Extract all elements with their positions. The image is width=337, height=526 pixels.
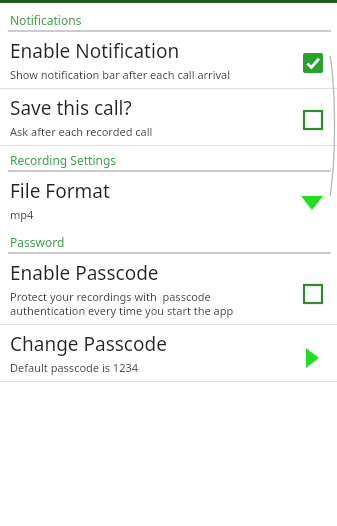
button[interactable]: Choose file format [297,188,327,218]
staticText: Password [10,234,65,250]
button[interactable]: Enable Passcode checkbox [297,278,327,308]
button[interactable]: Enable Passcode [0,254,337,324]
button[interactable]: Save this call checkbox [297,104,327,134]
staticText: Show notification bar after each call ar… [10,67,231,82]
staticText: Default passcode is 1234 [10,360,139,375]
staticText: Notifications [10,12,82,28]
button[interactable]: Change Passcode [297,343,327,373]
staticText: Protect your recordings with passcode au… [10,289,234,318]
staticText: Ask after each recorded call [10,124,153,139]
button[interactable]: Enable Notification [0,32,337,88]
staticText: File Format [10,178,110,204]
button[interactable]: Change Passcode [0,325,337,381]
staticText: Save this call? [10,95,132,121]
staticText: Recording Settings [10,152,117,168]
button[interactable]: File Format [0,172,337,228]
staticText: Enable Passcode [10,260,159,286]
staticText: Enable Notification [10,38,180,64]
staticText: mp4 [10,207,34,222]
button[interactable]: Enable Notification checkbox [297,47,327,77]
button[interactable]: Save this call? [0,89,337,145]
staticText: Change Passcode [10,331,167,357]
